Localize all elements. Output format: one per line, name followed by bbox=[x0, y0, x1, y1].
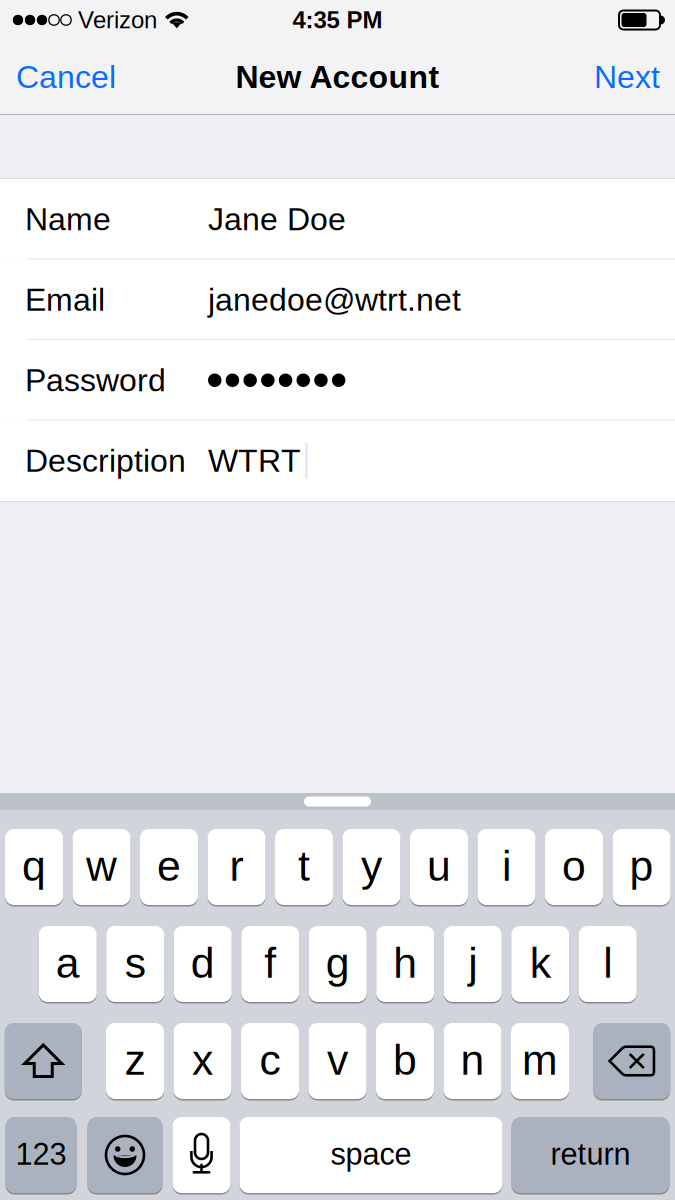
button[interactable]: b bbox=[376, 1022, 434, 1100]
staticText: m bbox=[522, 1036, 558, 1084]
button[interactable]: Name bbox=[0, 179, 675, 259]
button[interactable]: t bbox=[275, 828, 333, 906]
button[interactable]: s bbox=[106, 925, 164, 1003]
staticText: r bbox=[229, 842, 243, 890]
button[interactable]: k bbox=[511, 925, 569, 1003]
button[interactable]: x bbox=[173, 1022, 231, 1100]
button[interactable]: n bbox=[443, 1022, 501, 1100]
button[interactable]: Dictation bbox=[172, 1116, 230, 1194]
staticText: 123 bbox=[15, 1137, 66, 1171]
button[interactable]: p bbox=[612, 828, 670, 906]
staticText: n bbox=[460, 1036, 484, 1084]
staticText: v bbox=[327, 1036, 348, 1084]
button[interactable]: z bbox=[106, 1022, 164, 1100]
staticText: d bbox=[191, 939, 215, 987]
staticText: u bbox=[427, 842, 451, 890]
staticText: e bbox=[157, 842, 181, 890]
staticText: Email bbox=[25, 282, 105, 318]
staticText: q bbox=[22, 842, 46, 890]
button[interactable]: Delete bbox=[593, 1022, 670, 1100]
staticText: janedoe@wtrt.net bbox=[208, 282, 461, 318]
staticText: Verizon bbox=[78, 7, 157, 33]
staticText: i bbox=[502, 842, 511, 890]
button[interactable]: Description bbox=[0, 420, 675, 501]
button[interactable]: m bbox=[511, 1022, 569, 1100]
staticText: o bbox=[562, 842, 586, 890]
staticText: x bbox=[192, 1036, 213, 1084]
staticText: z bbox=[124, 1036, 145, 1084]
button[interactable]: a bbox=[39, 925, 97, 1003]
button[interactable]: e bbox=[140, 828, 198, 906]
button[interactable]: Email bbox=[0, 259, 675, 340]
staticText: l bbox=[603, 939, 612, 987]
staticText: h bbox=[393, 939, 417, 987]
button[interactable]: Cancel bbox=[0, 40, 134, 114]
button[interactable]: d bbox=[174, 925, 232, 1003]
button[interactable]: y bbox=[342, 828, 400, 906]
staticText: b bbox=[393, 1036, 417, 1084]
button[interactable]: i bbox=[477, 828, 535, 906]
staticText: g bbox=[326, 939, 350, 987]
button[interactable]: c bbox=[241, 1022, 299, 1100]
staticText: Password bbox=[25, 362, 166, 398]
button[interactable]: f bbox=[241, 925, 299, 1003]
staticText: WTRT bbox=[208, 443, 301, 479]
staticText: k bbox=[530, 939, 551, 987]
button[interactable]: Shift bbox=[5, 1022, 82, 1100]
button[interactable]: r bbox=[207, 828, 265, 906]
staticText: j bbox=[468, 939, 477, 987]
staticText: return bbox=[550, 1137, 630, 1171]
button[interactable]: 123 bbox=[5, 1116, 76, 1194]
staticText: f bbox=[264, 939, 276, 987]
button[interactable]: space bbox=[239, 1116, 502, 1194]
button[interactable]: Password bbox=[0, 340, 675, 420]
button[interactable]: return bbox=[511, 1116, 669, 1194]
button[interactable]: Emoji bbox=[87, 1116, 162, 1194]
staticText: Next bbox=[594, 59, 660, 95]
button[interactable]: q bbox=[5, 828, 63, 906]
staticText: s bbox=[125, 939, 146, 987]
staticText: space bbox=[330, 1137, 411, 1171]
staticText: Cancel bbox=[16, 59, 116, 95]
button[interactable]: l bbox=[579, 925, 637, 1003]
button[interactable]: v bbox=[308, 1022, 366, 1100]
staticText: t bbox=[298, 842, 310, 890]
staticText: a bbox=[56, 939, 80, 987]
staticText: Description bbox=[25, 443, 186, 479]
button[interactable]: o bbox=[545, 828, 603, 906]
button[interactable]: Next bbox=[576, 40, 675, 114]
staticText: w bbox=[86, 842, 117, 890]
staticText: c bbox=[259, 1036, 280, 1084]
button[interactable]: w bbox=[72, 828, 130, 906]
button[interactable]: g bbox=[309, 925, 367, 1003]
staticText: 4:35 PM bbox=[292, 7, 382, 33]
button[interactable]: j bbox=[444, 925, 502, 1003]
staticText: Name bbox=[25, 201, 111, 237]
staticText: p bbox=[629, 842, 653, 890]
staticText: New Account bbox=[235, 59, 439, 95]
staticText: y bbox=[361, 842, 382, 890]
staticText: Jane Doe bbox=[208, 201, 346, 237]
button[interactable]: h bbox=[376, 925, 434, 1003]
button[interactable]: u bbox=[410, 828, 468, 906]
